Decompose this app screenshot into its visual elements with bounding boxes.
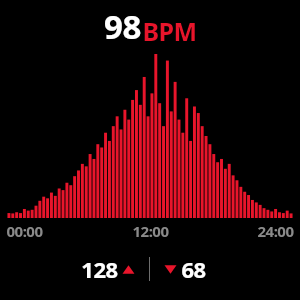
staticText: 68 (181, 254, 206, 284)
other: Minimum heart rate (164, 263, 177, 276)
staticText: 24:00 (257, 221, 294, 241)
button[interactable]: Heart rate history chart (0, 52, 300, 218)
staticText: 128 (81, 254, 118, 284)
staticText: 00:00 (6, 221, 43, 241)
staticText: 12:00 (132, 221, 169, 241)
other: Maximum heart rate (122, 263, 135, 276)
button[interactable]: Minimum heart rate (150, 252, 300, 286)
staticText: 98 (104, 4, 141, 49)
staticText: BPM (142, 14, 197, 48)
button[interactable]: 128 (0, 252, 149, 286)
button[interactable]: 98 (0, 0, 300, 52)
